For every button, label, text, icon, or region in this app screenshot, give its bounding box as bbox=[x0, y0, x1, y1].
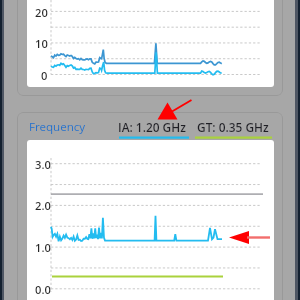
staticText: 10 bbox=[35, 36, 48, 51]
staticText: 3.0 bbox=[35, 157, 51, 172]
staticText: 20 bbox=[35, 5, 48, 20]
button[interactable]: IA: 1.20 GHz bbox=[113, 116, 190, 138]
staticText: 2.0 bbox=[35, 198, 51, 213]
staticText: IA: 1.20 GHz bbox=[118, 119, 186, 135]
staticText: 0.0 bbox=[35, 282, 51, 297]
staticText: 0 bbox=[41, 68, 48, 83]
button[interactable]: Frequency bbox=[25, 116, 115, 138]
button[interactable] bbox=[17, 0, 283, 96]
button[interactable] bbox=[17, 112, 283, 300]
staticText: GT: 0.35 GHz bbox=[197, 119, 269, 135]
button[interactable]: GT: 0.35 GHz bbox=[194, 116, 272, 138]
staticText: Frequency bbox=[29, 119, 86, 135]
staticText: 1.0 bbox=[35, 240, 51, 255]
